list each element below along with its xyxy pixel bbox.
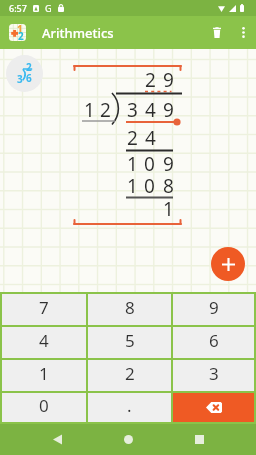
button[interactable]: . xyxy=(88,393,171,422)
staticText: 9 xyxy=(209,296,219,319)
button[interactable]: Back xyxy=(41,424,73,455)
staticText: 6 xyxy=(26,71,32,85)
staticText: 2 xyxy=(145,67,156,93)
staticText: 1 xyxy=(163,196,174,222)
button[interactable]: Delete xyxy=(203,16,231,49)
button[interactable]: 0 xyxy=(2,393,86,422)
staticText: 0 xyxy=(144,173,155,199)
staticText: Arithmetics xyxy=(42,24,114,42)
staticText: 8 xyxy=(163,173,174,199)
staticText: 2 xyxy=(125,362,135,385)
staticText: 4 xyxy=(39,329,49,352)
staticText: 7 xyxy=(39,296,49,319)
button[interactable]: 9 xyxy=(173,294,254,325)
button[interactable]: 4 xyxy=(2,327,86,358)
button[interactable]: 6 xyxy=(173,327,254,358)
staticText: G xyxy=(45,2,52,14)
staticText: 3 xyxy=(209,362,219,385)
staticText: 6:57 xyxy=(9,2,27,14)
button[interactable]: 1 xyxy=(2,360,86,391)
staticText: 1 xyxy=(17,24,23,36)
staticText: 3 xyxy=(17,72,23,86)
button[interactable]: Backspace xyxy=(173,393,254,422)
staticText: 2 xyxy=(26,60,32,74)
button[interactable]: 8 xyxy=(88,294,171,325)
staticText: 2 xyxy=(100,97,111,123)
button[interactable]: More options xyxy=(231,16,255,49)
staticText: 9 xyxy=(163,67,174,93)
staticText: 1 xyxy=(84,97,95,123)
staticText: 2 xyxy=(127,125,138,151)
staticText: 1 xyxy=(127,151,138,177)
staticText: 4 xyxy=(145,97,156,123)
staticText: 1 xyxy=(39,362,49,385)
button[interactable]: Add xyxy=(211,247,245,281)
staticText: 9 xyxy=(163,151,174,177)
button[interactable]: 3 xyxy=(173,360,254,391)
button[interactable]: Division example xyxy=(6,55,43,92)
button[interactable]: Home xyxy=(112,424,144,455)
staticText: 0 xyxy=(39,394,49,417)
staticText: . xyxy=(127,394,132,417)
staticText: 8 xyxy=(125,296,135,319)
button[interactable]: 5 xyxy=(88,327,171,358)
staticText: 5 xyxy=(125,329,135,352)
staticText: 3 xyxy=(127,97,138,123)
button[interactable]: Recents xyxy=(183,424,215,455)
button[interactable]: 7 xyxy=(2,294,86,325)
staticText: 2 xyxy=(18,29,24,41)
staticText: 6 xyxy=(209,329,219,352)
staticText: 9 xyxy=(163,97,174,123)
staticText: 1 xyxy=(127,173,138,199)
staticText: 0 xyxy=(144,151,155,177)
staticText: 4 xyxy=(145,125,156,151)
button[interactable]: 2 xyxy=(88,360,171,391)
